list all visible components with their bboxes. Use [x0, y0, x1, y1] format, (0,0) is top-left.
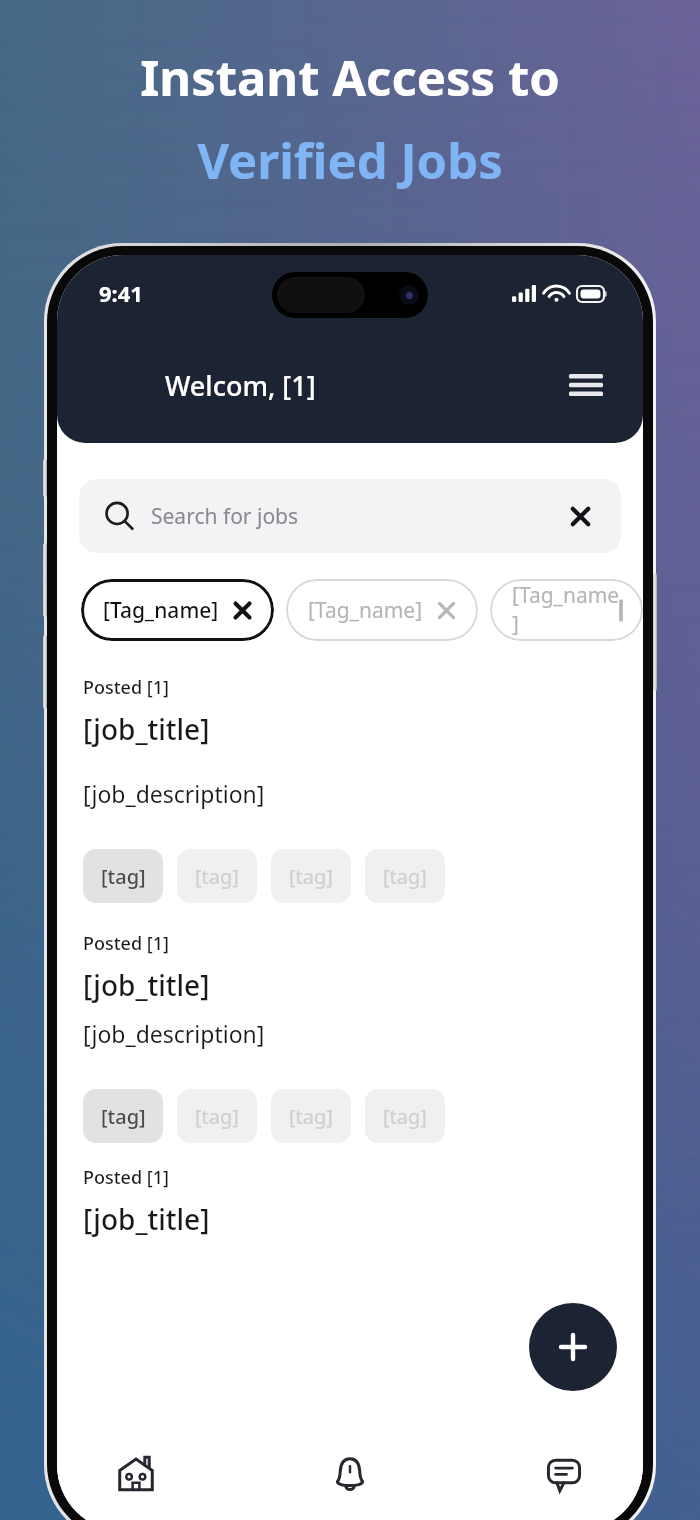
staticText: [job_title] [83, 710, 210, 748]
staticText: Posted [1] [83, 675, 169, 700]
staticText: [Tag_name] [308, 596, 423, 625]
button[interactable]: Notifications [317, 1441, 383, 1507]
staticText: [Tag_name] [103, 596, 219, 625]
button[interactable]: Posted [1] [83, 931, 617, 1143]
staticText: [tag] [195, 1103, 239, 1130]
button[interactable]: [Tag_name] [490, 579, 643, 641]
button[interactable]: [tag] [271, 1089, 351, 1143]
staticText: [tag] [289, 863, 333, 890]
button[interactable]: Posted [1] [83, 675, 617, 903]
button[interactable]: Search for jobs [79, 479, 621, 553]
button[interactable]: [tag] [83, 1089, 163, 1143]
staticText: [tag] [101, 1103, 146, 1130]
staticText: Posted [1] [83, 1165, 169, 1190]
staticText: Search for jobs [151, 502, 563, 531]
button[interactable]: Messages [531, 1441, 597, 1507]
staticText: [Tag_name] [512, 581, 621, 639]
staticText: Welcom, [1] [165, 367, 563, 404]
staticText: [job_title] [83, 966, 210, 1004]
button[interactable]: Clear search [563, 499, 597, 533]
button[interactable]: [tag] [271, 849, 351, 903]
staticText: Verified Jobs [197, 127, 503, 194]
staticText: Posted [1] [83, 931, 169, 956]
button[interactable]: [Tag_name] [81, 579, 274, 641]
button[interactable]: [Tag_name] [286, 579, 478, 641]
button[interactable]: [tag] [83, 849, 163, 903]
staticText: 9:41 [99, 278, 143, 308]
button[interactable]: [tag] [365, 1089, 445, 1143]
button[interactable]: Menu [563, 362, 609, 408]
staticText: [tag] [289, 1103, 333, 1130]
staticText: [tag] [383, 863, 427, 890]
staticText: Instant Access to [140, 44, 560, 111]
button[interactable]: Add job [529, 1303, 617, 1391]
button[interactable]: [tag] [177, 1089, 257, 1143]
staticText: [job_title] [83, 1200, 210, 1238]
staticText: [tag] [101, 863, 146, 890]
staticText: [tag] [383, 1103, 427, 1130]
staticText: [job_description] [83, 778, 265, 809]
button[interactable]: Posted [1] [83, 1165, 617, 1238]
button[interactable]: Home [103, 1441, 169, 1507]
staticText: [job_description] [83, 1018, 265, 1049]
staticText: [tag] [195, 863, 239, 890]
button[interactable]: [tag] [365, 849, 445, 903]
button[interactable]: [tag] [177, 849, 257, 903]
